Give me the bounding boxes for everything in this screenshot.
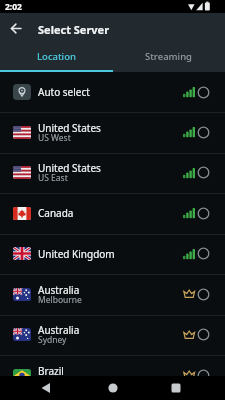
staticText: 2:02 — [5, 1, 22, 13]
staticText: Australia — [38, 283, 80, 297]
button[interactable]: Location — [0, 44, 112, 72]
staticText: United States — [38, 161, 101, 175]
staticText: Location — [37, 50, 76, 63]
staticText: Australia — [38, 323, 80, 337]
button[interactable]: United Kingdom — [0, 235, 225, 274]
button[interactable] — [34, 376, 58, 400]
button[interactable]: United States — [0, 154, 225, 193]
button[interactable]: Australia — [0, 316, 225, 355]
staticText: Sydney — [38, 334, 67, 346]
button[interactable] — [0, 13, 30, 44]
button[interactable]: Auto select — [0, 72, 225, 112]
staticText: Streaming — [145, 50, 192, 63]
staticText: US West — [38, 132, 71, 144]
button[interactable]: Australia — [0, 275, 225, 315]
staticText: US East — [38, 172, 68, 184]
staticText: Brazil — [38, 364, 64, 376]
button[interactable]: United States — [0, 113, 225, 153]
staticText: United States — [38, 121, 101, 135]
staticText: Select Server — [38, 22, 110, 37]
button[interactable] — [101, 376, 125, 400]
staticText: United Kingdom — [38, 247, 115, 261]
staticText: Melbourne — [38, 294, 82, 306]
staticText: Auto select — [38, 85, 90, 99]
button[interactable]: Streaming — [112, 44, 225, 72]
button[interactable]: Brazil — [0, 356, 225, 376]
button[interactable]: Canada — [0, 194, 225, 234]
button[interactable] — [164, 376, 188, 400]
staticText: Canada — [38, 206, 74, 220]
